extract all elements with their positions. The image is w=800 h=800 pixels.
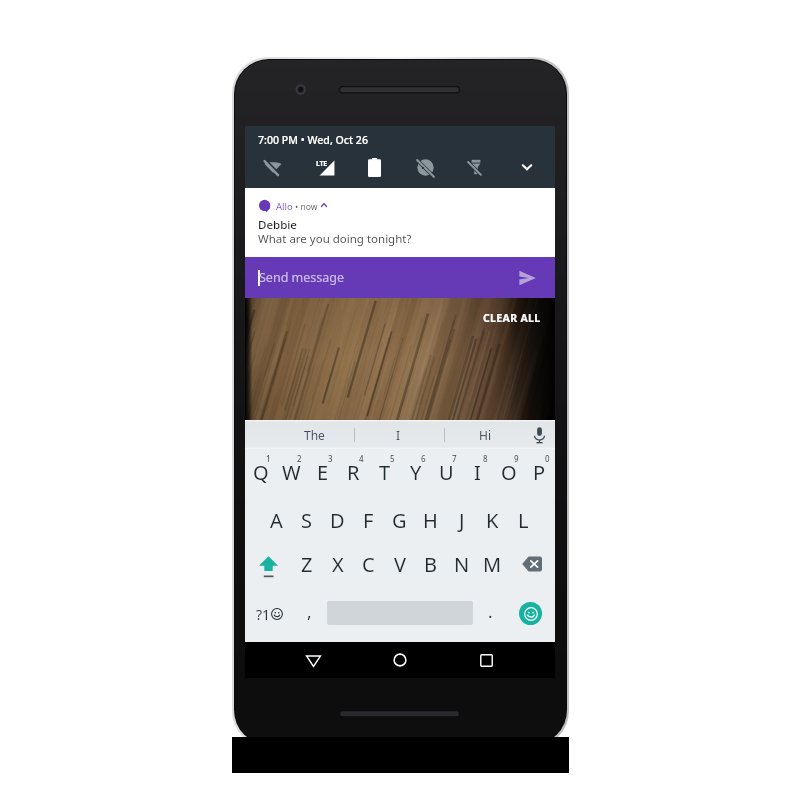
button[interactable]: Symbols: [245, 586, 294, 632]
staticText: W: [282, 459, 301, 486]
button[interactable]: 5: [369, 449, 400, 494]
button[interactable]: .: [475, 586, 505, 632]
button[interactable]: ,: [294, 586, 324, 632]
staticText: What are you doing tonight?: [258, 231, 412, 247]
button[interactable]: 1: [245, 449, 276, 494]
staticText: T: [379, 459, 391, 486]
button[interactable]: Allo: [256, 197, 348, 215]
staticText: 7:00 PM • Wed, Oct 26: [258, 133, 368, 147]
staticText: 7: [452, 453, 457, 464]
button[interactable]: 0: [524, 449, 555, 494]
staticText: The: [304, 427, 325, 443]
button[interactable]: F: [353, 494, 384, 540]
staticText: Hi: [479, 427, 491, 443]
button[interactable]: B: [415, 540, 446, 586]
button[interactable]: S: [291, 494, 322, 540]
button[interactable]: Recent apps: [465, 642, 507, 678]
button[interactable]: LTE signal: [312, 154, 338, 180]
staticText: U: [439, 459, 454, 486]
staticText: Allo: [276, 200, 293, 213]
button[interactable]: Expand quick settings: [514, 154, 540, 180]
staticText: 8: [483, 453, 488, 464]
staticText: R: [347, 459, 360, 486]
staticText: 9: [514, 453, 519, 464]
button[interactable]: X: [322, 540, 353, 586]
staticText: ,: [307, 600, 312, 623]
staticText: 1: [266, 453, 271, 464]
staticText: 3: [328, 453, 333, 464]
staticText: L: [518, 507, 529, 534]
staticText: P: [533, 459, 546, 486]
button[interactable]: Flashlight off: [463, 154, 489, 180]
button[interactable]: L: [508, 494, 539, 540]
staticText: F: [363, 507, 374, 534]
staticText: D: [330, 507, 345, 534]
staticText: K: [486, 507, 499, 534]
button[interactable]: 6: [400, 449, 431, 494]
staticText: Send message: [259, 269, 345, 286]
button[interactable]: Battery: [361, 154, 387, 180]
staticText: Z: [301, 551, 313, 578]
button[interactable]: Voice input: [521, 420, 557, 449]
staticText: LTE: [316, 159, 327, 169]
button[interactable]: 3: [307, 449, 338, 494]
button[interactable]: Space: [324, 586, 475, 632]
button[interactable]: A: [261, 494, 291, 540]
button[interactable]: Back: [292, 642, 334, 678]
staticText: S: [301, 507, 312, 534]
button[interactable]: Home: [379, 642, 421, 678]
button[interactable]: G: [384, 494, 415, 540]
staticText: 2: [297, 453, 302, 464]
staticText: Q: [253, 459, 269, 486]
staticText: M: [483, 551, 502, 578]
button[interactable]: Wi-Fi off: [260, 154, 286, 180]
staticText: H: [423, 507, 438, 534]
staticText: • now: [295, 201, 318, 213]
staticText: Debbie: [258, 217, 297, 233]
button[interactable]: D: [322, 494, 353, 540]
button[interactable]: M: [477, 540, 508, 586]
staticText: 5: [390, 453, 395, 464]
button[interactable]: 4: [338, 449, 369, 494]
staticText: 0: [545, 453, 550, 464]
staticText: ?1: [256, 605, 271, 624]
staticText: O: [501, 459, 517, 486]
button[interactable]: Z: [291, 540, 322, 586]
staticText: J: [459, 507, 465, 534]
button[interactable]: J: [446, 494, 477, 540]
staticText: Y: [410, 459, 422, 486]
staticText: I: [474, 459, 481, 486]
staticText: E: [317, 459, 329, 486]
button[interactable]: CLEAR ALL: [483, 311, 541, 325]
button[interactable]: K: [477, 494, 508, 540]
button[interactable]: The: [259, 420, 369, 449]
button[interactable]: 9: [493, 449, 524, 494]
button[interactable]: H: [415, 494, 446, 540]
staticText: I: [396, 427, 401, 443]
staticText: C: [362, 551, 375, 578]
staticText: 6: [421, 453, 426, 464]
staticText: 4: [359, 453, 364, 464]
staticText: N: [454, 551, 470, 578]
staticText: A: [270, 507, 283, 534]
button[interactable]: 8: [462, 449, 493, 494]
button[interactable]: Emoji: [505, 586, 555, 632]
button[interactable]: Send message: [245, 257, 555, 298]
button[interactable]: 2: [276, 449, 307, 494]
button[interactable]: C: [353, 540, 384, 586]
staticText: X: [332, 551, 344, 578]
button[interactable]: I: [353, 420, 443, 449]
button[interactable]: Hi: [440, 420, 530, 449]
button[interactable]: Auto-rotate off: [412, 154, 438, 180]
staticText: V: [394, 551, 406, 578]
staticText: G: [392, 507, 407, 534]
button[interactable]: V: [384, 540, 415, 586]
button[interactable]: Backspace: [508, 540, 555, 586]
staticText: .: [488, 600, 493, 623]
button[interactable]: N: [446, 540, 477, 586]
staticText: B: [424, 551, 437, 578]
button[interactable]: Shift: [245, 540, 291, 586]
button[interactable]: 7: [431, 449, 462, 494]
